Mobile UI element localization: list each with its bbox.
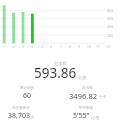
staticText: 11	[94, 44, 102, 49]
staticText: 600	[98, 16, 113, 21]
staticText: 平均配速	[79, 106, 94, 111]
staticText: 400	[98, 24, 113, 29]
staticText: /公里	[91, 115, 100, 120]
staticText: 千卡	[99, 95, 107, 100]
button[interactable]: 平均配速	[53, 106, 120, 120]
staticText: 8	[66, 44, 74, 49]
staticText: 2	[10, 44, 18, 49]
staticText: 4	[28, 44, 36, 49]
staticText: 总消耗	[82, 86, 93, 91]
staticText: 公里	[78, 75, 87, 80]
button[interactable]: 累计时长	[0, 86, 54, 101]
staticText: 12	[104, 44, 112, 49]
staticText: 累计时长	[20, 86, 35, 91]
staticText: 593.86	[34, 64, 77, 82]
staticText: 步	[31, 115, 35, 120]
staticText: 5	[38, 44, 46, 49]
staticText: 10	[85, 44, 93, 49]
staticText: 9	[75, 44, 83, 49]
staticText: 200	[98, 33, 113, 38]
staticText: 800	[98, 8, 113, 13]
staticText: 总步数统计	[12, 106, 30, 111]
button[interactable]: 总步数统计	[3, 106, 39, 120]
staticText: 总里程	[54, 61, 67, 66]
staticText: 38,703	[8, 111, 30, 120]
staticText: 7	[57, 44, 65, 49]
button[interactable]: 总消耗	[55, 86, 120, 101]
staticText: 3496.82	[69, 91, 98, 101]
staticText: 60	[23, 91, 32, 101]
staticText: 5'55"	[73, 111, 90, 120]
staticText: 3	[19, 44, 27, 49]
staticText: 6	[47, 44, 55, 49]
staticText: 1	[0, 44, 8, 49]
